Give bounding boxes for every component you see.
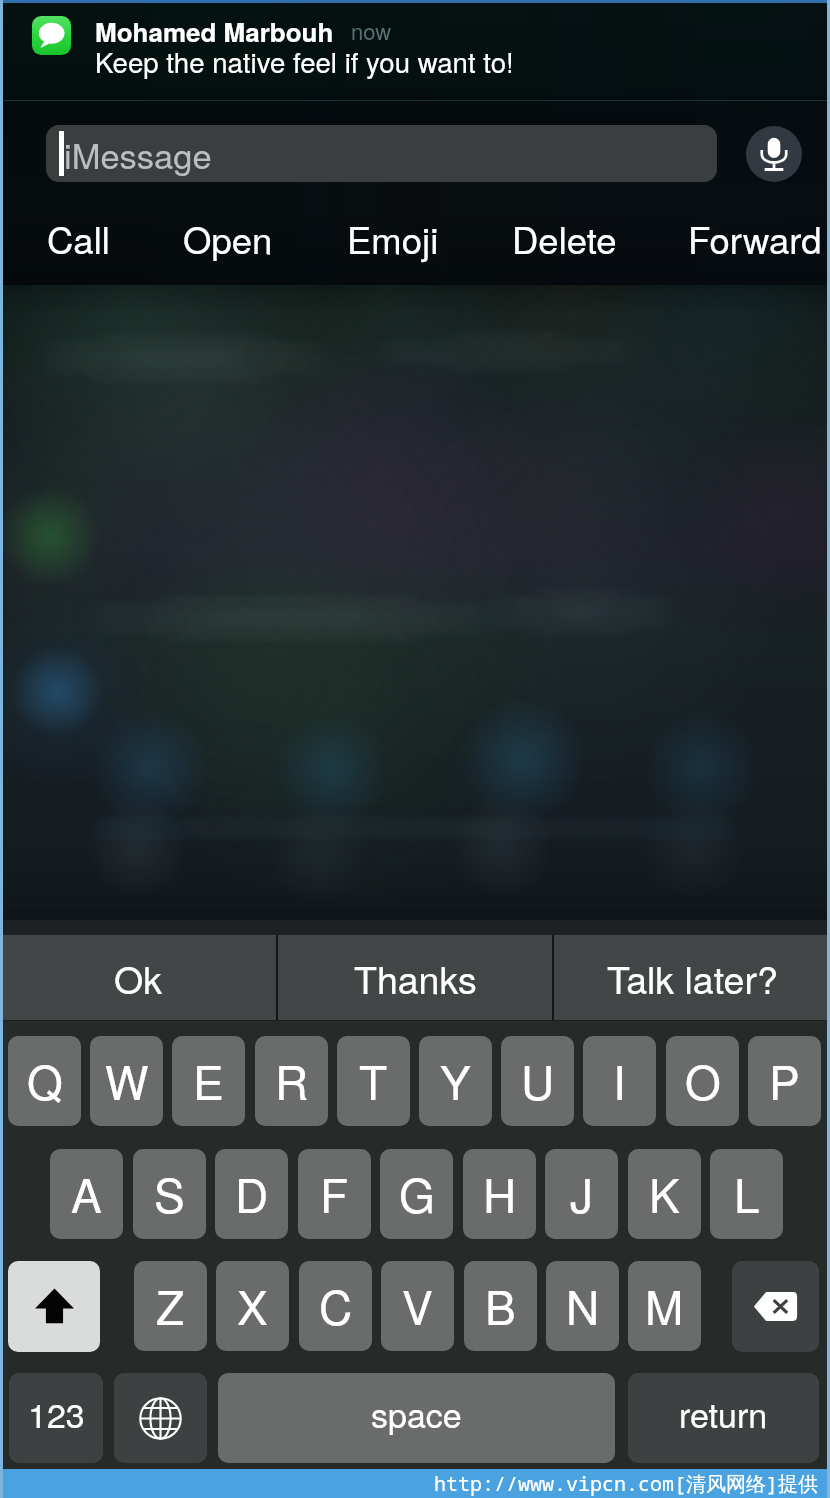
staticText: Z — [156, 1272, 185, 1338]
button[interactable]: Thanks — [278, 935, 552, 1020]
staticText: T — [359, 1047, 388, 1113]
button[interactable]: Shift — [8, 1261, 100, 1352]
staticText: B — [485, 1272, 516, 1338]
button[interactable]: U — [501, 1036, 574, 1126]
button[interactable]: 123 — [9, 1373, 103, 1463]
button[interactable]: S — [133, 1149, 206, 1239]
button[interactable]: Next keyboard — [114, 1373, 207, 1463]
button[interactable]: T — [337, 1036, 410, 1126]
button[interactable]: Y — [419, 1036, 492, 1126]
button[interactable]: A — [50, 1149, 123, 1239]
staticText: Keep the native feel if you want to! — [95, 41, 514, 81]
staticText: I — [613, 1047, 626, 1113]
button[interactable]: E — [172, 1036, 245, 1126]
button[interactable]: J — [545, 1149, 618, 1239]
staticText: A — [71, 1160, 102, 1226]
button[interactable]: I — [583, 1036, 656, 1126]
staticText: L — [734, 1160, 760, 1226]
button[interactable]: Forward — [665, 207, 830, 269]
staticText: U — [521, 1047, 555, 1113]
button[interactable]: H — [463, 1149, 536, 1239]
staticText: K — [649, 1160, 680, 1226]
staticText: Mohamed Marbouh — [95, 13, 334, 50]
button[interactable]: return — [628, 1373, 819, 1463]
staticText: Call — [47, 212, 110, 264]
button[interactable]: X — [216, 1261, 289, 1351]
button[interactable]: L — [710, 1149, 783, 1239]
staticText: H — [483, 1160, 517, 1226]
button[interactable]: Ok — [0, 935, 276, 1020]
staticText: 123 — [28, 1389, 85, 1438]
staticText: Y — [440, 1047, 471, 1113]
staticText: Q — [27, 1047, 63, 1113]
staticText: S — [154, 1160, 185, 1226]
button[interactable]: Z — [134, 1261, 207, 1351]
staticText: space — [371, 1389, 462, 1438]
staticText: D — [235, 1160, 269, 1226]
staticText: Forward — [688, 212, 822, 264]
staticText: E — [193, 1047, 224, 1113]
staticText: P — [769, 1047, 800, 1113]
button[interactable]: iMessage — [46, 125, 717, 182]
staticText: Open — [183, 212, 273, 264]
button[interactable]: K — [628, 1149, 701, 1239]
staticText: Talk later? — [607, 951, 778, 1005]
button[interactable]: M — [628, 1261, 701, 1351]
button[interactable]: F — [298, 1149, 371, 1239]
button[interactable]: W — [90, 1036, 163, 1126]
staticText: X — [237, 1272, 268, 1338]
staticText: R — [275, 1047, 309, 1113]
button[interactable]: Mohamed Marbouh — [0, 0, 830, 100]
staticText: N — [566, 1272, 600, 1338]
staticText: Thanks — [354, 951, 477, 1005]
button[interactable]: V — [381, 1261, 454, 1351]
button[interactable]: Open — [138, 207, 318, 269]
button[interactable]: N — [546, 1261, 619, 1351]
button[interactable]: space — [218, 1373, 615, 1463]
button[interactable]: Emoji — [303, 207, 483, 269]
staticText: return — [679, 1389, 768, 1438]
button[interactable]: G — [380, 1149, 453, 1239]
button[interactable]: Dictate — [746, 126, 802, 182]
button[interactable]: B — [464, 1261, 537, 1351]
staticText: J — [570, 1160, 593, 1226]
staticText: O — [685, 1047, 721, 1113]
button[interactable]: R — [255, 1036, 328, 1126]
staticText: W — [105, 1047, 149, 1113]
staticText: now — [351, 15, 392, 47]
staticText: Ok — [114, 951, 162, 1005]
button[interactable]: Delete — [474, 207, 654, 269]
staticText: C — [319, 1272, 353, 1338]
button[interactable]: C — [299, 1261, 372, 1351]
staticText: Delete — [512, 212, 617, 264]
staticText: G — [399, 1160, 435, 1226]
button[interactable]: Backspace — [732, 1261, 819, 1352]
staticText: Emoji — [347, 212, 439, 264]
staticText: V — [402, 1272, 433, 1338]
staticText: M — [645, 1272, 684, 1338]
staticText: iMessage — [64, 129, 212, 178]
button[interactable]: Call — [0, 207, 168, 269]
button[interactable]: O — [666, 1036, 739, 1126]
staticText: http://www.vipcn.com[清风网络]提供 — [434, 1470, 818, 1497]
button[interactable]: Talk later? — [554, 935, 830, 1020]
button[interactable]: D — [215, 1149, 288, 1239]
button[interactable]: P — [748, 1036, 821, 1126]
button[interactable]: Q — [8, 1036, 81, 1126]
staticText: F — [320, 1160, 349, 1226]
